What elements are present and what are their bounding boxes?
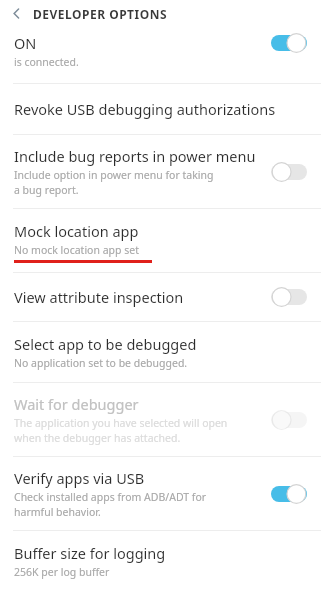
staticText: Buffer size for logging — [14, 543, 166, 563]
button[interactable]: Back — [0, 0, 33, 27]
button[interactable]: Wait for debugger — [0, 383, 321, 456]
button[interactable]: Off — [271, 162, 307, 182]
staticText: Mock location app — [14, 221, 139, 241]
staticText: is connected. — [14, 55, 79, 69]
staticText: Verify apps via USB — [14, 468, 145, 488]
button[interactable]: ON — [0, 27, 321, 58]
staticText: The application you have selected will o… — [14, 416, 228, 430]
button[interactable]: Mock location app — [0, 209, 321, 272]
staticText: 256K per log buffer — [14, 565, 110, 579]
staticText: DEVELOPER OPTIONS — [33, 6, 168, 22]
staticText: No application set to be debugged. — [14, 356, 188, 370]
button[interactable]: On — [271, 484, 307, 504]
button[interactable]: Select app to be debugged — [0, 322, 321, 382]
staticText: Select app to be debugged — [14, 334, 197, 354]
staticText: Revoke USB debugging authorizations — [14, 99, 276, 119]
button[interactable]: Off — [271, 410, 307, 430]
staticText: View attribute inspection — [14, 287, 184, 307]
button[interactable]: Buffer size for logging — [0, 531, 321, 591]
staticText: ON — [14, 33, 271, 53]
staticText: a bug report. — [14, 183, 79, 197]
button[interactable]: On — [271, 33, 307, 53]
button[interactable]: Revoke USB debugging authorizations — [0, 84, 321, 134]
staticText: Check installed apps from ADB/ADT for — [14, 490, 207, 504]
staticText: No mock location app set — [14, 243, 139, 257]
staticText: Wait for debugger — [14, 394, 139, 414]
button[interactable]: View attribute inspection — [0, 273, 321, 321]
button[interactable]: Off — [271, 287, 307, 307]
button[interactable]: Verify apps via USB — [0, 457, 321, 530]
staticText: Include bug reports in power menu — [14, 146, 256, 166]
staticText: Include option in power menu for taking — [14, 168, 214, 182]
staticText: when the debugger has attached. — [14, 431, 181, 445]
button[interactable]: Include bug reports in power menu — [0, 135, 321, 208]
staticText: harmful behavior. — [14, 505, 101, 519]
